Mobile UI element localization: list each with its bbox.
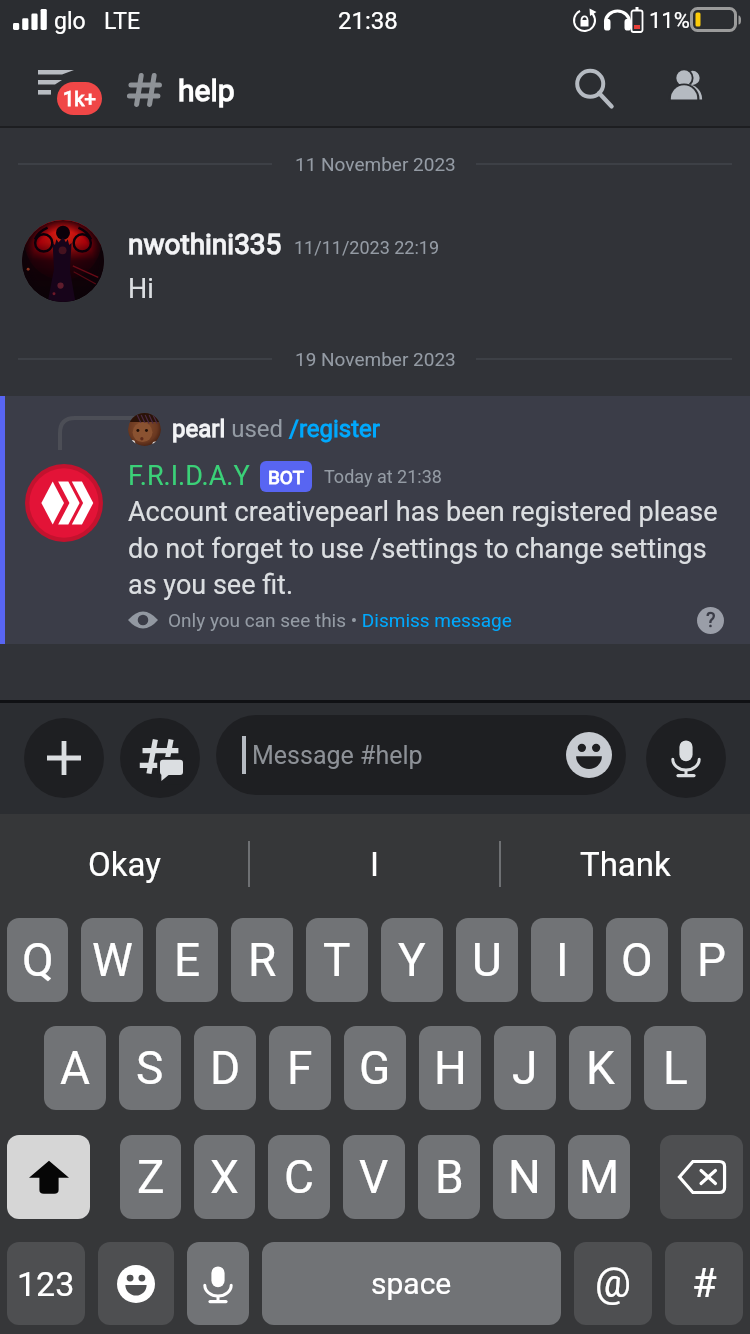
button[interactable]: I [531,918,593,1002]
staticText: W [92,933,133,987]
button[interactable]: Voice input [187,1242,249,1325]
button[interactable]: L [644,1026,706,1110]
button[interactable]: J [494,1026,556,1110]
button[interactable]: Search [558,52,630,124]
staticText: K [586,1041,615,1095]
staticText: Message #help [252,741,423,770]
button[interactable]: # [665,1242,743,1325]
button[interactable]: space [262,1242,561,1325]
staticText: 11% [649,8,690,34]
staticText: B [435,1150,464,1204]
staticText: 11/11/2023 22:19 [294,237,440,258]
button[interactable]: Help [684,594,736,646]
button[interactable]: nwothini335 [0,210,750,310]
button[interactable]: K [569,1026,631,1110]
staticText: L [663,1041,688,1095]
button[interactable]: Backspace [660,1135,743,1219]
button[interactable]: Only you can see this • Dismiss message [168,609,512,631]
staticText: O [621,933,653,987]
button[interactable]: A [44,1026,106,1110]
staticText: I [370,845,379,884]
staticText: D [210,1041,241,1095]
button[interactable]: Emoji [98,1242,174,1325]
staticText: ? [706,608,716,631]
button[interactable]: Add attachment [24,718,104,798]
staticText: V [359,1150,389,1204]
button[interactable]: I [250,814,499,914]
staticText: P [697,933,727,987]
staticText: # [692,1260,717,1307]
button[interactable]: R [231,918,293,1002]
staticText: Account creativepearl has been registere… [128,496,724,600]
staticText: nwothini335 [128,228,282,261]
staticText: R [248,933,277,987]
button[interactable]: Thank [501,814,750,914]
staticText: Y [398,933,426,987]
button[interactable]: B [418,1135,480,1219]
staticText: Okay [88,845,161,884]
staticText: Z [137,1150,165,1204]
staticText: BOT [268,466,304,488]
button[interactable]: Open channels [30,64,112,126]
staticText: S [136,1041,164,1095]
button[interactable]: Members [652,52,724,124]
staticText: H [434,1041,467,1095]
button[interactable]: N [493,1135,555,1219]
staticText: Hi [128,273,154,305]
staticText: N [508,1150,541,1204]
staticText: 1k+ [63,87,96,110]
button[interactable]: @ [574,1242,652,1325]
button[interactable]: Emoji [561,727,617,783]
button[interactable]: X [194,1135,255,1219]
button[interactable]: pearl used /register [172,415,380,443]
button[interactable]: C [268,1135,330,1219]
staticText: @ [595,1260,631,1307]
button[interactable]: Browse channels [120,718,200,798]
staticText: M [579,1150,620,1204]
staticText: A [60,1041,91,1095]
button[interactable]: Y [381,918,443,1002]
staticText: Today at 21:38 [324,466,442,487]
staticText: 21:38 [338,7,398,35]
staticText: help [178,73,235,108]
button[interactable]: U [456,918,518,1002]
staticText: LTE [104,8,141,35]
staticText: E [174,933,201,987]
staticText: T [323,933,351,987]
staticText: X [210,1150,239,1204]
button[interactable]: Okay [0,814,248,914]
staticText: U [472,933,502,987]
button[interactable]: E [156,918,218,1002]
button[interactable]: T [306,918,368,1002]
staticText: Thank [580,845,671,884]
button[interactable]: D [194,1026,256,1110]
staticText: F.R.I.D.A.Y [128,460,250,492]
staticText: Q [22,933,54,987]
staticText: 123 [17,1264,75,1304]
staticText: J [512,1041,538,1095]
staticText: G [359,1041,391,1095]
staticText: space [371,1266,452,1301]
button[interactable]: W [81,918,143,1002]
staticText: F [287,1041,313,1095]
staticText: 11 November 2023 [295,153,456,175]
button[interactable]: Z [120,1135,181,1219]
button[interactable]: V [343,1135,405,1219]
button[interactable]: S [119,1026,181,1110]
button[interactable]: O [606,918,668,1002]
staticText: C [284,1150,314,1204]
button[interactable]: Q [7,918,68,1002]
button[interactable]: H [419,1026,481,1110]
button[interactable]: F [269,1026,331,1110]
button[interactable]: G [344,1026,406,1110]
button[interactable]: M [568,1135,630,1219]
button[interactable]: Shift [7,1135,90,1219]
staticText: 19 November 2023 [295,348,456,370]
staticText: glo [54,8,86,35]
button[interactable]: 123 [7,1242,85,1325]
button[interactable]: help [126,62,235,118]
button[interactable]: Message #help [216,715,626,795]
staticText: I [556,933,569,987]
button[interactable]: Voice message [646,718,726,798]
button[interactable]: P [681,918,743,1002]
